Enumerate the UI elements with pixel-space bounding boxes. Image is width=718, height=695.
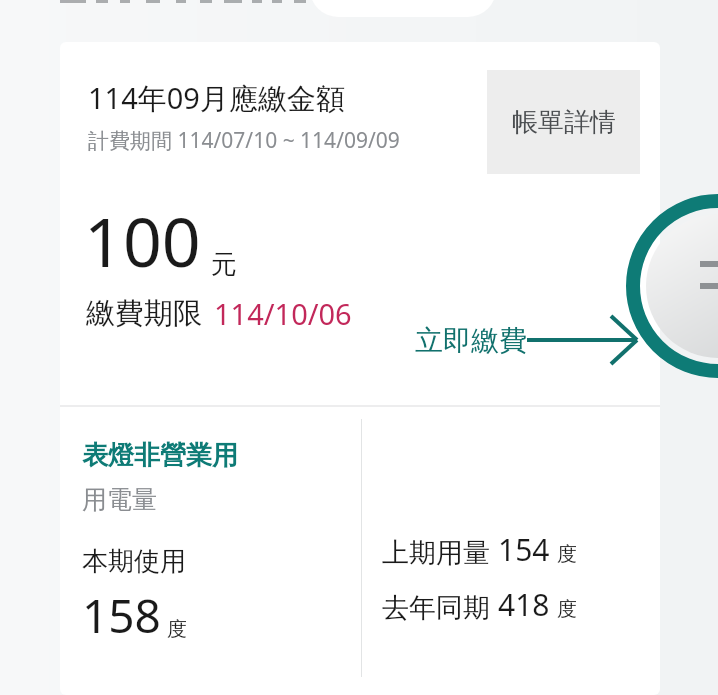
staticText: 繳費期限 [86,295,202,332]
staticText: 100 [84,194,201,287]
staticText: 114年09月應繳金額 [88,78,345,118]
button[interactable]: 立即繳費 [415,317,637,363]
button[interactable] [310,0,496,17]
staticText: 立即繳費 [415,323,527,358]
staticText: 154 [498,529,550,570]
button[interactable]: 帳單詳情 [487,70,640,174]
staticText: 114/10/06 [214,294,352,333]
staticText: 度 [167,617,187,642]
staticText: 元 [211,248,237,281]
staticText: 418 [498,584,550,625]
staticText: 上期用量 [382,533,498,570]
staticText: 帳單詳情 [512,106,616,139]
button[interactable]: Menu [626,194,718,378]
staticText: 表燈非營業用 [82,439,238,472]
staticText: 度 [557,597,577,622]
staticText: 158 [82,584,161,647]
staticText: 本期使用 [82,545,186,578]
staticText: 度 [557,542,577,567]
staticText: 去年同期 [382,588,498,625]
staticText: 用電量 [82,484,157,515]
staticText: 計費期間 114/07/10 ~ 114/09/09 [88,126,400,155]
